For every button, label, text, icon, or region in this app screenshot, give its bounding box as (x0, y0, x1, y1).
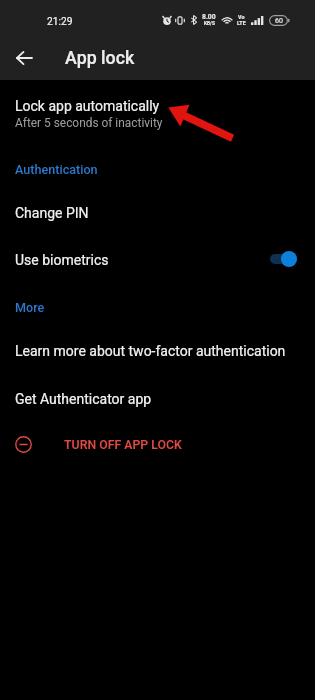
button[interactable]: Back (2, 38, 45, 78)
staticText: 8.00 (202, 13, 216, 21)
button[interactable]: Use biometrics (0, 241, 315, 288)
staticText: More (15, 300, 45, 315)
staticText: LTE (237, 20, 246, 26)
staticText: Use biometrics (15, 252, 109, 268)
staticText: Get Authenticator app (15, 391, 152, 407)
button[interactable]: Get Authenticator app (0, 380, 315, 427)
button[interactable]: Learn more about two-factor authenticati… (0, 333, 315, 380)
staticText: 60 (275, 17, 283, 25)
staticText: Authentication (15, 162, 98, 177)
button[interactable]: Use biometrics, on (270, 249, 298, 269)
staticText: Learn more about two-factor authenticati… (15, 343, 286, 359)
staticText: TURN OFF APP LOCK (64, 438, 182, 452)
button[interactable]: TURN OFF APP LOCK (0, 426, 315, 464)
staticText: 21:29 (47, 16, 73, 28)
staticText: KB/S (204, 21, 215, 27)
staticText: After 5 seconds of inactivity (15, 116, 163, 130)
staticText: Lock app automatically (15, 98, 160, 114)
staticText: Change PIN (15, 205, 89, 221)
button[interactable]: Lock app automatically (0, 89, 315, 137)
button[interactable]: Change PIN (0, 194, 315, 241)
staticText: Vo (238, 14, 245, 20)
staticText: App lock (65, 47, 135, 68)
